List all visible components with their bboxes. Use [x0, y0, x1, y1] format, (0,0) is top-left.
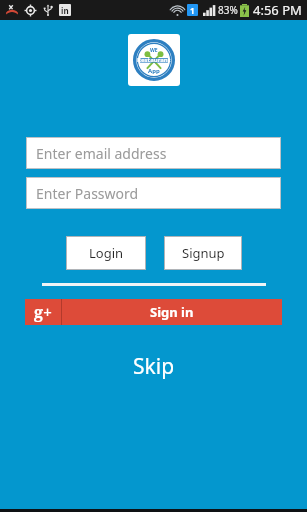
- button[interactable]: Signup: [164, 236, 242, 270]
- staticText: 1: [190, 5, 195, 16]
- button[interactable]: Login: [66, 236, 146, 270]
- button[interactable]: Enter email address: [26, 137, 281, 169]
- staticText: Skip: [133, 352, 175, 381]
- button[interactable]: Enter Password: [26, 177, 281, 209]
- staticText: g+: [34, 301, 53, 323]
- button[interactable]: Skip: [121, 349, 187, 384]
- staticText: 83%: [218, 3, 238, 17]
- button[interactable]: g+: [25, 299, 282, 325]
- staticText: Login: [89, 244, 124, 262]
- staticText: Restaurant: [137, 56, 171, 64]
- staticText: Enter Password: [36, 184, 139, 203]
- staticText: 4:56 PM: [253, 1, 302, 19]
- staticText: WE: [150, 47, 158, 54]
- staticText: App: [148, 67, 160, 75]
- staticText: in: [61, 5, 69, 16]
- staticText: Signup: [182, 244, 225, 262]
- staticText: Enter email address: [36, 144, 167, 163]
- staticText: Sign in: [150, 303, 194, 321]
